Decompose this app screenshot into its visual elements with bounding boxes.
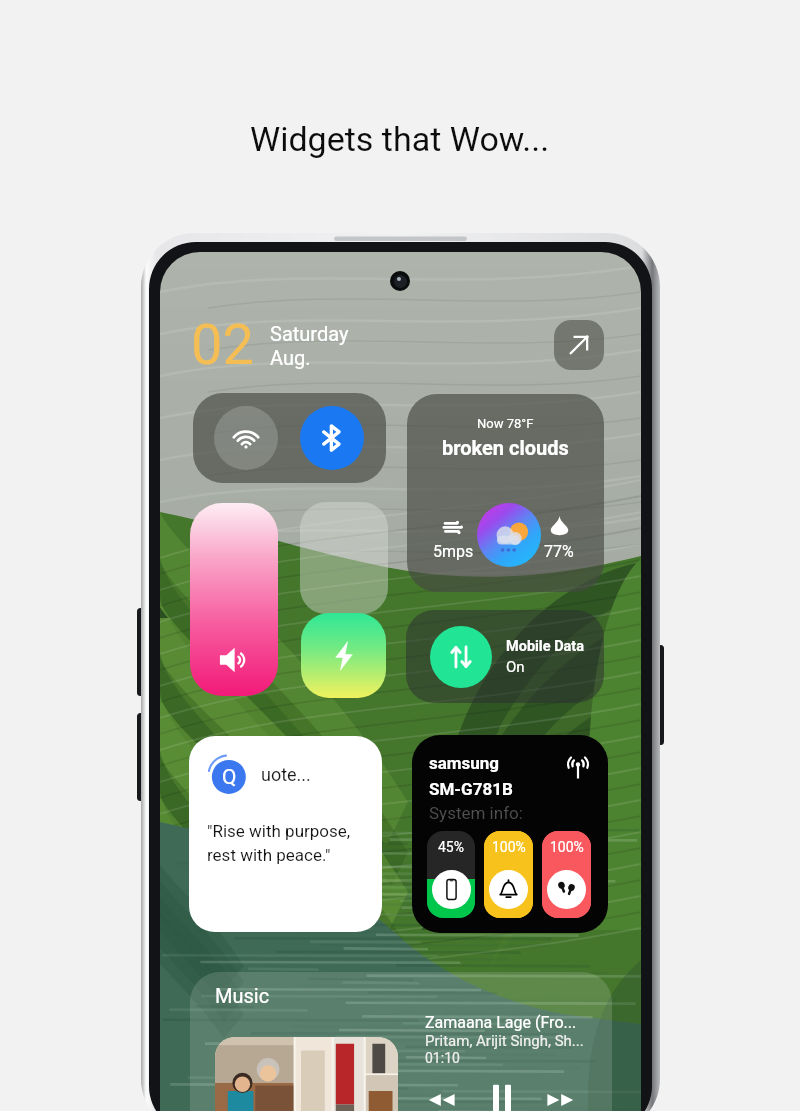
staticText: Q (222, 765, 237, 790)
button[interactable]: Bluetooth (300, 406, 364, 470)
staticText: System info: (429, 803, 523, 823)
button[interactable]: Flashlight (301, 613, 386, 698)
staticText: On (506, 658, 525, 676)
staticText: 5mps (433, 542, 474, 561)
staticText: 100% (550, 839, 584, 855)
button[interactable]: Previous (422, 1080, 462, 1111)
button[interactable]: Expand widget (554, 320, 604, 370)
staticText: SM-G781B (429, 779, 513, 799)
button[interactable]: Q (189, 736, 382, 932)
button[interactable]: Mobile Data (406, 610, 604, 703)
button[interactable]: Volume (190, 503, 278, 696)
staticText: Aug. (270, 346, 311, 369)
button[interactable]: Music (190, 972, 612, 1111)
button[interactable]: samsung (412, 735, 608, 933)
staticText: Now 78°F (477, 416, 534, 431)
staticText: Widgets that Wow... (250, 119, 550, 159)
button[interactable]: Pause (480, 1076, 524, 1111)
staticText: "Rise with purpose, rest with peace." (207, 821, 351, 865)
staticText: Music (215, 984, 270, 1007)
staticText: Pritam, Arijit Singh, Sh... (425, 1032, 584, 1050)
staticText: 01:10 (425, 1050, 460, 1066)
staticText: Mobile Data (506, 638, 584, 655)
button[interactable]: Now 78°F (407, 394, 604, 592)
staticText: Saturday (270, 322, 349, 345)
staticText: 45% (438, 839, 464, 855)
staticText: uote... (261, 764, 311, 785)
button[interactable]: Next (540, 1080, 580, 1111)
staticText: broken clouds (442, 436, 569, 459)
staticText: samsung (429, 753, 500, 773)
button[interactable]: Wi-Fi (214, 406, 278, 470)
staticText: Zamaana Lage (Fro... (425, 1013, 577, 1032)
staticText: 100% (492, 839, 526, 855)
staticText: 77% (544, 542, 574, 561)
staticText: 02 (191, 312, 254, 378)
